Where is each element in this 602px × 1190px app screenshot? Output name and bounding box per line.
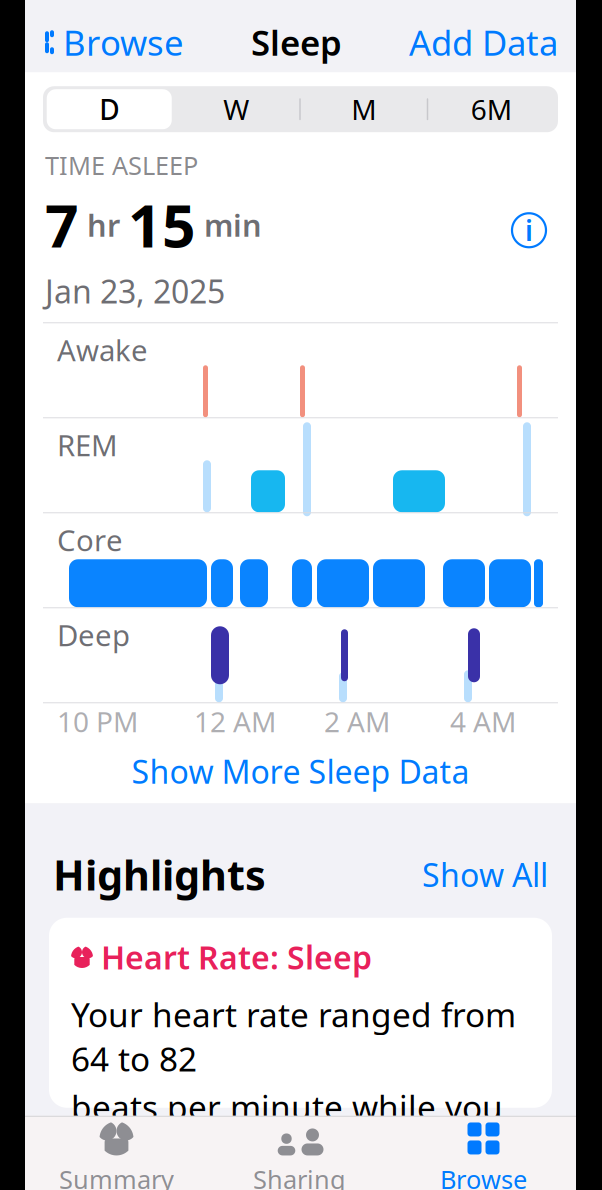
staticText: 4 AM [450, 703, 516, 740]
button[interactable]: Browse [391, 1117, 576, 1190]
staticText: D [99, 91, 119, 128]
staticText: TIME ASLEEP [45, 148, 198, 182]
staticText: Highlights [53, 847, 266, 902]
staticText: Add Data [409, 19, 558, 65]
staticText: W [223, 91, 249, 128]
staticText: Browse [63, 19, 184, 65]
staticText: beats per minute while you were asleep. [71, 1085, 503, 1173]
staticText: Jan 23, 2025 [45, 270, 225, 312]
staticText: hr [79, 204, 128, 245]
button[interactable]: Heart Rate: Sleep [49, 918, 552, 1108]
staticText: min [196, 204, 262, 245]
staticText: Deep [57, 615, 130, 654]
staticText: 15 [128, 186, 196, 264]
button[interactable]: Sharing [208, 1117, 391, 1190]
staticText: Summary [59, 1162, 174, 1190]
staticText: REM [57, 425, 118, 464]
button[interactable]: Show All [410, 845, 548, 904]
staticText: Your heart rate ranged from 64 to 82 [71, 992, 516, 1081]
staticText: Core [57, 520, 123, 559]
button[interactable]: 6M [428, 89, 554, 129]
staticText: 6M [471, 91, 512, 128]
staticText: 7 [45, 186, 79, 264]
staticText: Sharing [253, 1162, 346, 1190]
button[interactable]: About sleep stages [502, 203, 556, 257]
button[interactable]: W [173, 89, 299, 129]
button[interactable]: Show More Sleep Data [25, 739, 576, 803]
button[interactable]: Summary [25, 1117, 208, 1190]
staticText: Heart Rate: Sleep [101, 936, 372, 978]
staticText: 10 PM [57, 703, 138, 740]
staticText: i [525, 212, 533, 249]
button[interactable]: Add Data [395, 9, 572, 75]
staticText: Show All [422, 853, 548, 896]
staticText: M [351, 91, 376, 128]
button[interactable]: M [301, 89, 427, 129]
staticText: 12 AM [194, 703, 276, 740]
staticText: Sleep [251, 19, 342, 65]
staticText: Awake [57, 330, 148, 369]
button[interactable]: Browse [29, 9, 198, 75]
staticText: Show More Sleep Data [131, 750, 469, 792]
staticText: Browse [440, 1162, 527, 1190]
button[interactable]: D [47, 89, 172, 129]
staticText: 2 AM [324, 703, 390, 740]
